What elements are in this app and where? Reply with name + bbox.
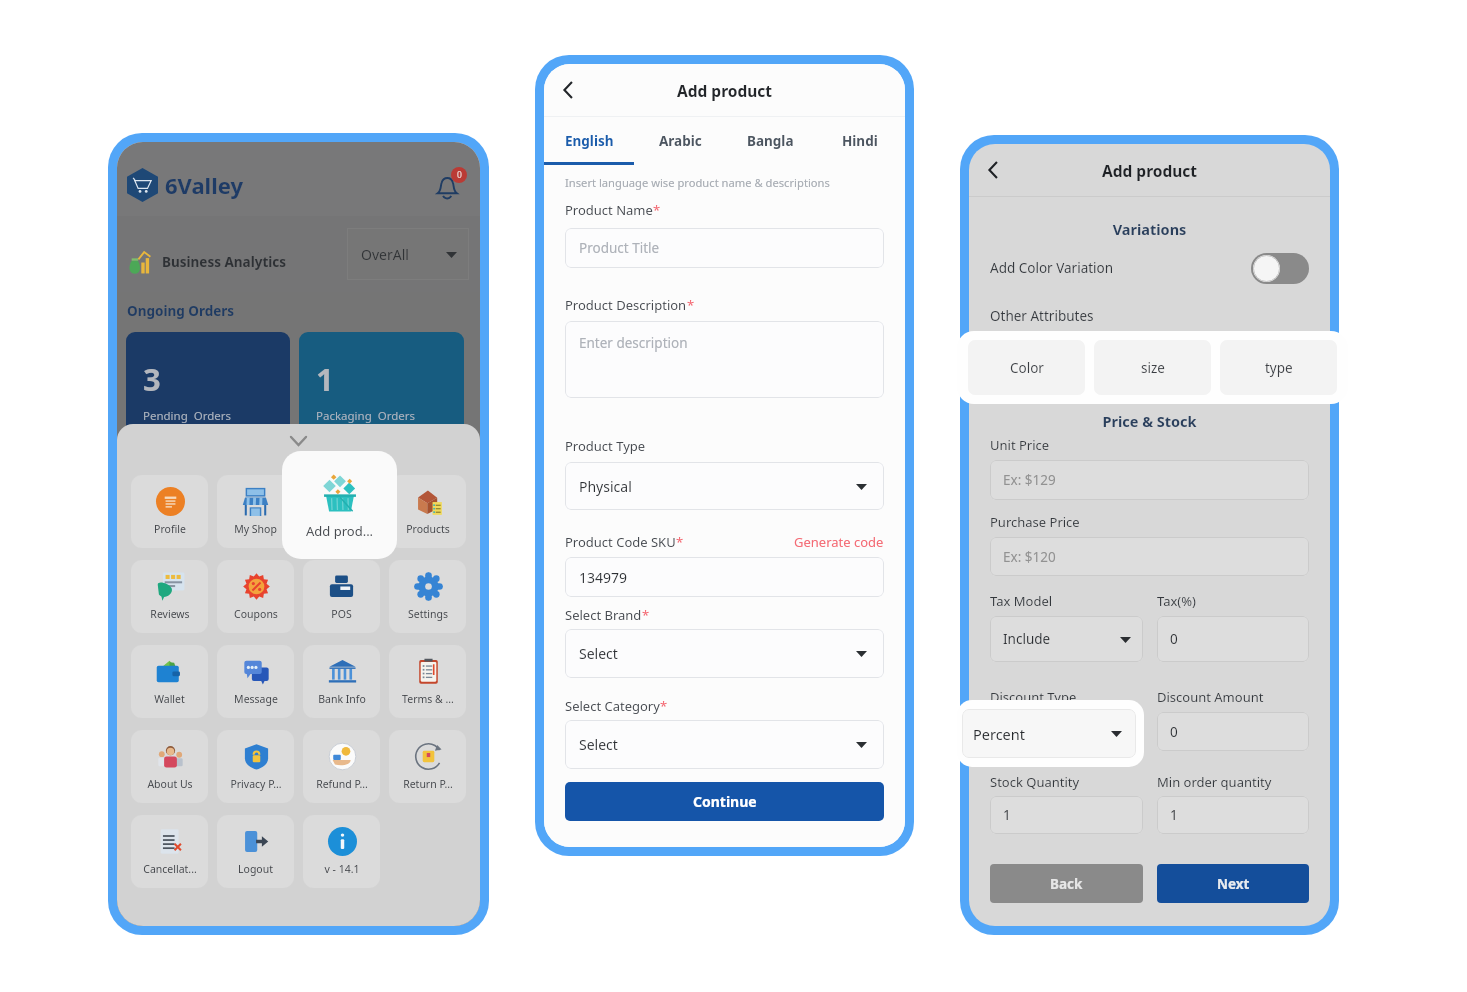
staticText: Packaging Orders <box>316 408 416 424</box>
staticText: Business Analytics <box>162 253 287 271</box>
button[interactable]: Bangla <box>725 117 815 165</box>
button[interactable]: Generate code <box>794 533 884 551</box>
button[interactable]: Wallet <box>131 645 208 718</box>
button[interactable]: size <box>1094 340 1211 395</box>
button[interactable]: Bank Info <box>303 645 380 718</box>
staticText: Discount Type <box>990 688 1077 706</box>
button[interactable]: Back <box>990 864 1143 903</box>
button[interactable]: Add prod... <box>282 451 397 559</box>
button[interactable]: Ex: $120 <box>990 537 1309 576</box>
button[interactable]: Terms & ... <box>389 645 466 718</box>
button[interactable]: Select <box>565 629 884 678</box>
button[interactable]: 1 <box>1157 796 1309 834</box>
button[interactable]: 0 <box>1157 616 1309 662</box>
button[interactable]: Return P... <box>389 730 466 803</box>
button[interactable]: Continue <box>565 782 884 821</box>
staticText: 0 <box>1170 630 1178 648</box>
button[interactable]: type <box>1220 340 1337 395</box>
button[interactable]: Add Color Variation toggle <box>1251 253 1309 284</box>
button[interactable]: Back <box>553 75 583 105</box>
button[interactable]: Product Title <box>565 228 884 268</box>
staticText: Return P... <box>403 777 453 791</box>
staticText: v - 14.1 <box>324 862 360 876</box>
button[interactable]: Enter description <box>565 321 884 398</box>
staticText: Arabic <box>659 132 702 150</box>
button[interactable]: Add prod... <box>303 475 380 548</box>
button[interactable]: Physical <box>565 462 884 510</box>
button[interactable]: Products <box>389 475 466 548</box>
button[interactable]: Hindi <box>815 117 905 165</box>
button[interactable]: About Us <box>131 730 208 803</box>
button[interactable]: Privacy P... <box>217 730 294 803</box>
staticText: Color <box>1010 359 1044 377</box>
staticText: Enter description <box>579 334 688 352</box>
staticText: Generate code <box>794 533 884 551</box>
staticText: Terms & ... <box>402 692 454 706</box>
button[interactable]: OverAll <box>347 228 469 280</box>
staticText: Continue <box>693 792 757 811</box>
button[interactable]: Message <box>217 645 294 718</box>
button[interactable]: Coupons <box>217 560 294 633</box>
staticText: POS <box>331 607 352 621</box>
staticText: Min order quantity <box>1157 773 1272 791</box>
staticText: Discount Amount <box>1157 688 1264 706</box>
button[interactable]: Notifications <box>434 167 467 200</box>
staticText: 1 <box>1003 806 1011 824</box>
button[interactable]: Select <box>565 720 884 769</box>
staticText: Product Description <box>565 296 687 314</box>
staticText: Include <box>1003 630 1051 648</box>
staticText: size <box>1141 359 1165 377</box>
staticText: Product Name <box>565 201 653 219</box>
button[interactable]: Reviews <box>131 560 208 633</box>
staticText: * <box>642 606 650 624</box>
button[interactable]: Back <box>978 155 1008 185</box>
staticText: Coupons <box>234 607 278 621</box>
staticText: OverAll <box>361 245 409 264</box>
button[interactable]: Settings <box>389 560 466 633</box>
staticText: Privacy P... <box>230 777 282 791</box>
staticText: Message <box>234 692 278 706</box>
staticText: Product Title <box>579 239 660 257</box>
staticText: Settings <box>408 607 448 621</box>
button[interactable]: Cancellat... <box>131 815 208 888</box>
button[interactable]: 0 <box>1157 712 1309 751</box>
staticText: 1 <box>316 358 334 400</box>
staticText: Reviews <box>150 607 190 621</box>
staticText: English <box>565 132 614 150</box>
staticText: Select Category <box>565 697 660 715</box>
staticText: Stock Quantity <box>990 773 1080 791</box>
staticText: Add prod... <box>306 522 374 540</box>
staticText: Ongoing Orders <box>127 302 235 320</box>
staticText: Tax(%) <box>1157 592 1196 610</box>
staticText: My Shop <box>234 522 277 536</box>
button[interactable]: Arabic <box>635 117 725 165</box>
staticText: Other Attributes <box>990 307 1094 325</box>
button[interactable]: Profile <box>131 475 208 548</box>
staticText: Product Type <box>565 437 646 455</box>
staticText: Physical <box>579 477 632 496</box>
button[interactable]: v - 14.1 <box>303 815 380 888</box>
staticText: Logout <box>238 862 273 876</box>
staticText: * <box>676 533 684 551</box>
staticText: Add prod... <box>314 522 369 536</box>
button[interactable]: Logout <box>217 815 294 888</box>
button[interactable]: Color <box>968 340 1085 395</box>
button[interactable]: Ex: $129 <box>990 460 1309 500</box>
staticText: Profile <box>154 522 186 536</box>
button[interactable]: 1 <box>299 332 464 434</box>
button[interactable]: English <box>544 117 635 165</box>
staticText: Back <box>1050 875 1083 893</box>
button[interactable]: Percent <box>962 709 1136 758</box>
staticText: type <box>1265 359 1293 377</box>
button[interactable]: Include <box>990 616 1143 662</box>
button[interactable]: Next <box>1157 864 1309 903</box>
staticText: Next <box>1217 875 1250 893</box>
staticText: 6Valley <box>165 170 243 200</box>
button[interactable]: My Shop <box>217 475 294 548</box>
button[interactable]: 134979 <box>565 557 884 597</box>
button[interactable]: Refund P... <box>303 730 380 803</box>
button[interactable]: 1 <box>990 796 1143 834</box>
staticText: 1 <box>1170 806 1178 824</box>
button[interactable]: 3 <box>126 332 290 434</box>
button[interactable]: POS <box>303 560 380 633</box>
